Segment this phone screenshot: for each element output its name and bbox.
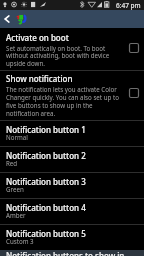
staticText: Activate on boot (6, 32, 69, 43)
button[interactable]: Notification button 3 (0, 173, 144, 198)
staticText: Amber (6, 211, 26, 219)
button[interactable]: Notification button 4 (0, 199, 144, 224)
button[interactable]: Show notification (0, 71, 144, 120)
staticText: Normal (6, 133, 28, 141)
staticText: Set automatically on boot. To boot witho… (6, 44, 126, 68)
staticText: Red (6, 159, 18, 167)
button[interactable]: Notification button 5 (0, 225, 144, 250)
button[interactable]: Notification button 1 (0, 121, 144, 146)
button[interactable]: Toggle Activate on boot (129, 43, 139, 53)
staticText: Custom 3 (6, 237, 34, 245)
staticText: Notification button 3 (6, 176, 86, 187)
staticText: Notification button 4 (6, 202, 86, 213)
button[interactable]: Notification button 2 (0, 147, 144, 172)
staticText: The notification lets you activate Color… (6, 85, 126, 117)
staticText: Notification button 2 (6, 150, 86, 161)
staticText: Show notification (6, 73, 73, 84)
button[interactable]: Navigate up (0, 10, 14, 28)
staticText: 6:47 pm (116, 1, 141, 10)
staticText: Notification button 5 (6, 228, 86, 239)
button[interactable]: Notification buttons to show in app (0, 250, 144, 256)
staticText: Notification buttons to show in app (6, 250, 138, 256)
button[interactable]: Activate on boot (0, 28, 144, 70)
staticText: Green (6, 185, 24, 193)
staticText: Notification button 1 (6, 124, 86, 135)
button[interactable]: Toggle Show notification (129, 88, 139, 98)
